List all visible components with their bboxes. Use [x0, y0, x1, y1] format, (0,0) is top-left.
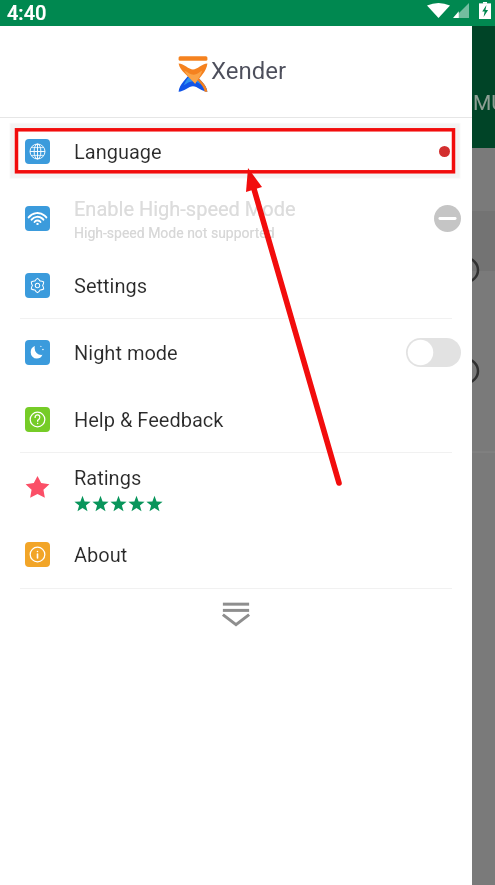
staticText: Night mode — [74, 341, 178, 364]
button[interactable]: Language — [0, 117, 472, 185]
staticText: Ratings — [74, 466, 142, 489]
staticText: Language — [74, 140, 162, 163]
button[interactable]: Settings — [0, 252, 472, 318]
staticText: Settings — [74, 274, 148, 297]
staticText: About — [74, 543, 128, 566]
staticText: High-speed Mode not supported — [74, 225, 275, 241]
button[interactable]: Night mode — [0, 319, 472, 386]
staticText: 4:40 — [7, 1, 47, 24]
button[interactable]: About — [0, 521, 472, 588]
button[interactable]: Collapse menu — [0, 589, 472, 636]
staticText: Help & Feedback — [74, 408, 224, 431]
staticText: MUSIC — [473, 91, 495, 116]
staticText: Xender — [211, 57, 287, 85]
button[interactable]: Enable High-speed Mode — [0, 185, 472, 252]
staticText: Enable High-speed Mode — [74, 197, 296, 220]
button[interactable]: Help & Feedback — [0, 386, 472, 452]
button[interactable]: Ratings — [0, 453, 472, 521]
